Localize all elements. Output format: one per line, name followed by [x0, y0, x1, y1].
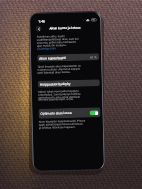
staticText: Akkusi tukee normaalia huippusu — [38, 89, 79, 94]
button[interactable]: Lisätietoja lisää — [37, 46, 56, 51]
staticText: oppii päivittäisestä latausrutiinistasi — [39, 122, 83, 127]
staticText: ja odottaa latauksen loppuun. — [39, 125, 76, 130]
staticText: Puhelimen akku, kuten — [37, 34, 66, 39]
staticText: rrattuna uuteen. Alentunut kapasit — [37, 67, 80, 72]
staticText: Optimoitu akun lataus — [40, 111, 73, 116]
button[interactable]: Back — [35, 26, 41, 32]
staticText: Akun kunto ja lataus — [49, 26, 81, 30]
staticText: ominaisuutta, joka estää yllättävät — [38, 95, 80, 100]
staticText: uudelleenladattavat akut, ovat kul — [37, 37, 79, 42]
staticText: ajan myötä iän mukana. — [37, 43, 67, 48]
staticText: Akun käyttöiän hidastamiseksi iPhone — [39, 119, 86, 124]
staticText: uvia osia, joiden teho heikkenee — [37, 40, 77, 45]
staticText: 81 % — [90, 55, 97, 59]
staticText: iPhonen sammumiset, ei ole. — [38, 97, 74, 102]
staticText: Tämä ilmaisee akun kapasiteetin ve — [37, 64, 81, 69]
staticText: eetti lyhentää akun kestoa. — [37, 70, 71, 75]
staticText: orituskykyä. Suorituskyvyn hallinta — [38, 92, 81, 97]
button[interactable]: Akun kapasiteetti — [37, 53, 99, 62]
staticText: 1:46 — [38, 18, 45, 24]
staticText: Huippusuorituskyky — [40, 82, 71, 87]
staticText: Akun kapasiteetti — [39, 56, 66, 61]
button[interactable]: Optimoitu akun lataus — [38, 107, 101, 119]
button[interactable]: Huippusuorituskyky — [38, 79, 100, 88]
